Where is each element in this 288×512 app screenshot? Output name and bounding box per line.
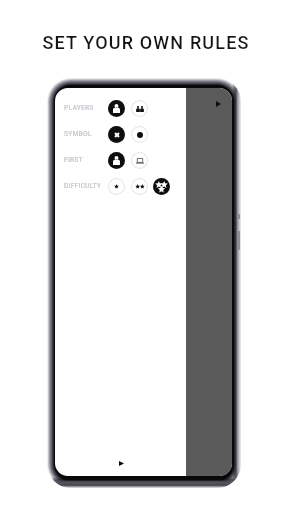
button[interactable]: Difficulty 1 [108, 178, 125, 195]
staticText: DIFFICULTY [64, 181, 101, 190]
button[interactable]: Symbol O [131, 126, 148, 143]
button[interactable]: One player [108, 100, 125, 117]
button[interactable]: Two players [131, 100, 148, 117]
staticText: SYMBOL [64, 129, 92, 138]
button[interactable]: Difficulty 2 [131, 178, 148, 195]
other: Game board [186, 88, 232, 476]
staticText: PLAYERS [64, 103, 94, 112]
staticText: SET YOUR OWN RULES [2, 32, 288, 53]
button[interactable]: Player first [108, 152, 125, 169]
button[interactable]: Symbol X [108, 126, 125, 143]
staticText: FIRST [64, 155, 83, 164]
button[interactable]: Difficulty 3 [153, 178, 170, 195]
button[interactable]: Play [216, 101, 221, 107]
button[interactable]: Computer first [131, 152, 148, 169]
button[interactable]: Start game [119, 461, 124, 466]
